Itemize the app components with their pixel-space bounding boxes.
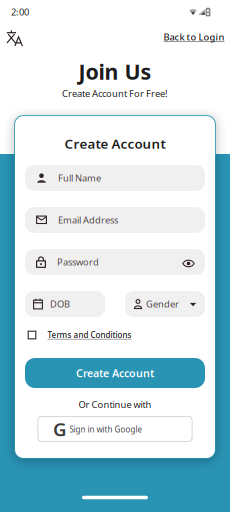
button[interactable]: Gender <box>125 291 205 317</box>
staticText: Sign in with Google <box>69 424 142 435</box>
staticText: Full Name <box>58 172 101 184</box>
button[interactable]: G <box>37 416 192 442</box>
button[interactable]: Accept terms <box>26 329 37 340</box>
staticText: Create Account For Free! <box>62 87 168 100</box>
button[interactable]: Email Address <box>25 207 205 233</box>
button[interactable]: Terms and Conditions <box>47 330 131 340</box>
staticText: DOB <box>50 298 70 310</box>
staticText: Join Us <box>78 57 151 86</box>
staticText: Create Account <box>64 135 165 152</box>
staticText: Gender <box>146 298 179 310</box>
staticText: Create Account <box>76 366 154 380</box>
staticText: Back to Login <box>163 31 224 43</box>
staticText: Terms and Conditions <box>47 330 131 340</box>
button[interactable]: Back to Login <box>163 31 224 43</box>
staticText: 2:00 <box>11 6 29 18</box>
staticText: Or Continue with <box>78 398 151 411</box>
button[interactable]: Change language <box>4 27 25 48</box>
button[interactable]: Full Name <box>25 165 205 191</box>
button[interactable]: Password <box>25 249 205 275</box>
staticText: G <box>53 417 67 441</box>
staticText: Password <box>57 256 99 268</box>
button[interactable]: Create Account <box>25 358 205 388</box>
button[interactable]: DOB <box>25 291 105 317</box>
button[interactable]: Show password <box>180 256 197 270</box>
staticText: Email Address <box>58 214 118 226</box>
